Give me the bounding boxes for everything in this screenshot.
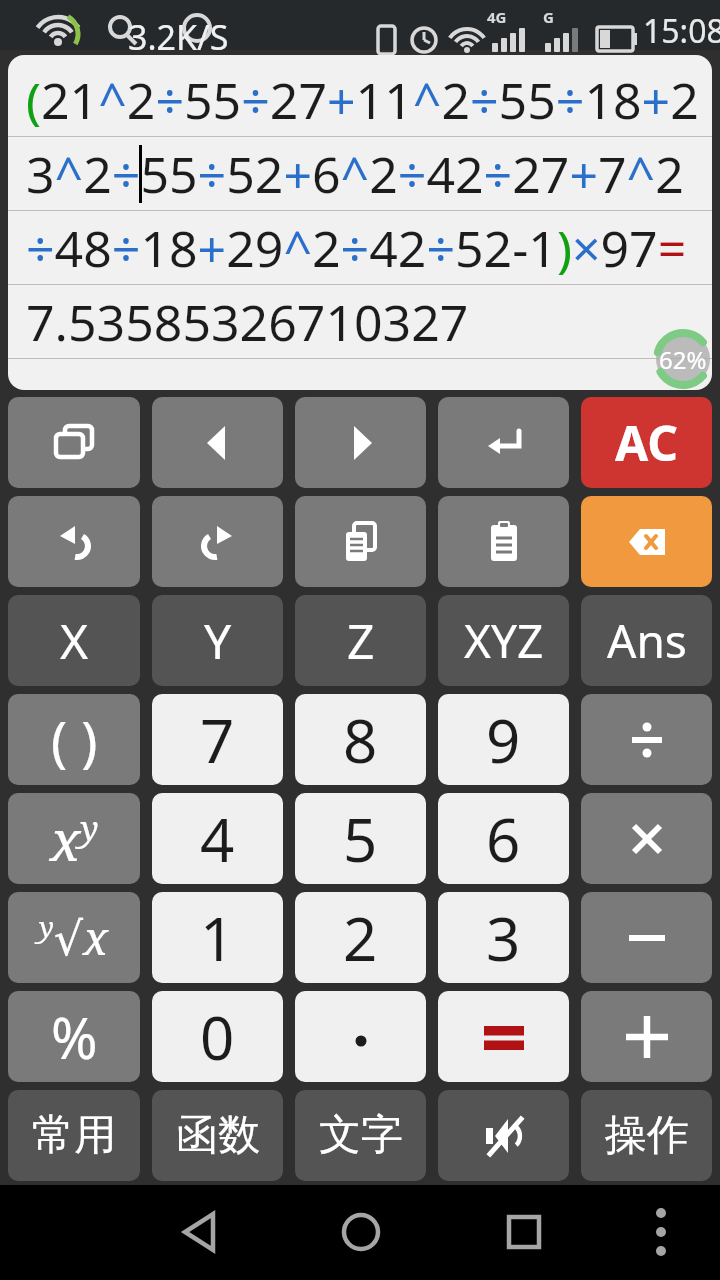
button[interactable]: 文字 [295, 1090, 426, 1181]
staticText: 7 [200, 699, 235, 781]
button[interactable] [581, 991, 712, 1082]
button[interactable]: 4 [152, 793, 283, 884]
button[interactable]: 函数 [152, 1090, 283, 1181]
button[interactable]: Y [152, 595, 283, 686]
staticText: (21^2÷55÷27+11^2÷55÷18+2 [26, 66, 699, 134]
staticText: 文字 [319, 1109, 403, 1162]
staticText: 6 [486, 798, 521, 880]
button[interactable]: xy [8, 793, 140, 884]
staticText: 8 [343, 699, 378, 781]
button[interactable]: ( ) [8, 694, 140, 785]
button[interactable] [295, 496, 426, 587]
staticText: Z [347, 608, 375, 673]
staticText: 4G [487, 7, 507, 27]
staticText: 2 [343, 897, 378, 979]
staticText: Y [204, 608, 232, 673]
staticText: 3 [486, 897, 521, 979]
staticText: 函数 [176, 1109, 260, 1162]
button[interactable] [581, 694, 712, 785]
staticText: 操作 [605, 1109, 689, 1162]
button[interactable]: XYZ [438, 595, 569, 686]
button[interactable] [8, 496, 140, 587]
staticText: 7.53585326710327 [26, 288, 469, 356]
staticText: Ans [607, 609, 687, 672]
staticText: y√x [39, 906, 109, 969]
button[interactable] [438, 496, 569, 587]
button[interactable]: 6 [438, 793, 569, 884]
button[interactable]: 5 [295, 793, 426, 884]
button[interactable]: X [8, 595, 140, 686]
staticText: 9 [486, 699, 521, 781]
button[interactable] [152, 496, 283, 587]
staticText: 5 [343, 798, 378, 880]
button[interactable]: % [8, 991, 140, 1082]
button[interactable]: 3 [438, 892, 569, 983]
button[interactable]: 0 [152, 991, 283, 1082]
staticText: 62% [659, 343, 707, 376]
staticText: ÷48÷18+29^2÷42÷52-1)×97= [26, 214, 687, 282]
button[interactable]: 2 [295, 892, 426, 983]
button[interactable]: 8 [295, 694, 426, 785]
button[interactable] [0, 1185, 720, 1280]
button[interactable] [438, 1090, 569, 1181]
button[interactable]: 操作 [581, 1090, 712, 1181]
staticText: X [60, 608, 89, 673]
staticText: AC [615, 410, 679, 475]
button[interactable]: 9 [438, 694, 569, 785]
button[interactable] [295, 397, 426, 488]
button[interactable]: 1 [152, 892, 283, 983]
button[interactable] [438, 397, 569, 488]
staticText: 15:08 [643, 9, 720, 53]
button[interactable] [152, 397, 283, 488]
button[interactable]: Ans [581, 595, 712, 686]
staticText: G [543, 7, 554, 27]
button[interactable] [438, 991, 569, 1082]
staticText: 4 [200, 798, 235, 880]
button[interactable]: y√x [8, 892, 140, 983]
staticText: xy [50, 801, 99, 877]
staticText: 3.2K/S [128, 14, 229, 60]
button[interactable] [295, 991, 426, 1082]
button[interactable] [8, 397, 140, 488]
staticText: 3^2÷55÷52+6^2÷42÷27+7^2 [26, 140, 684, 208]
button[interactable] [581, 892, 712, 983]
button[interactable]: (21^2÷55÷27+11^2÷55÷18+2 [8, 55, 712, 390]
staticText: XYZ [464, 609, 544, 672]
button[interactable] [581, 793, 712, 884]
button[interactable]: 常用 [8, 1090, 140, 1181]
button[interactable]: Z [295, 595, 426, 686]
staticText: 常用 [32, 1109, 116, 1162]
staticText: ( ) [51, 703, 98, 777]
staticText: 0 [200, 996, 235, 1078]
button[interactable]: 7 [152, 694, 283, 785]
staticText: % [51, 999, 98, 1075]
button[interactable]: AC [581, 397, 712, 488]
staticText: 1 [200, 897, 235, 979]
button[interactable] [581, 496, 712, 587]
